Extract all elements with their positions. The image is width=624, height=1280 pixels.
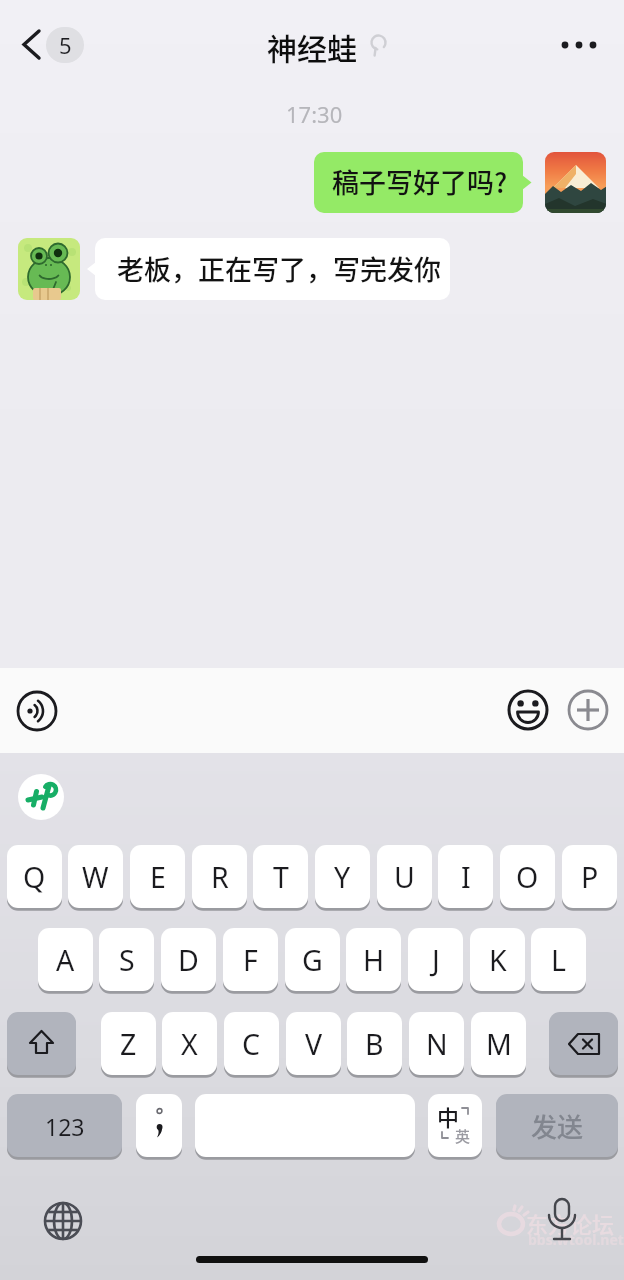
button[interactable] xyxy=(136,1094,182,1158)
staticText: T xyxy=(273,858,289,897)
button[interactable] xyxy=(18,238,80,300)
button[interactable]: Z xyxy=(101,1012,156,1076)
button[interactable]: O xyxy=(500,845,555,909)
staticText: 17:30 xyxy=(286,99,343,129)
button[interactable] xyxy=(507,689,549,731)
button[interactable]: M xyxy=(471,1012,526,1076)
staticText: C xyxy=(242,1025,261,1064)
staticText: L xyxy=(551,941,566,980)
button[interactable]: 中 xyxy=(428,1094,482,1158)
staticText: K xyxy=(489,941,507,980)
staticText: 123 xyxy=(45,1111,85,1142)
button[interactable]: U xyxy=(377,845,432,909)
staticText: Z xyxy=(120,1025,137,1064)
button[interactable] xyxy=(567,689,609,731)
button[interactable]: 稿子写好了吗? xyxy=(314,152,532,213)
staticText: O xyxy=(516,858,539,897)
button[interactable] xyxy=(18,774,64,820)
staticText: J xyxy=(432,941,440,980)
staticText: M xyxy=(486,1025,512,1064)
button[interactable] xyxy=(552,24,608,64)
button[interactable]: 发送 xyxy=(496,1094,618,1158)
button[interactable]: V xyxy=(286,1012,341,1076)
staticText: G xyxy=(302,941,323,980)
button[interactable]: T xyxy=(253,845,308,909)
button[interactable] xyxy=(545,152,606,213)
staticText: 老板，正在写了，写完发你 xyxy=(117,249,441,288)
staticText: X xyxy=(181,1025,198,1064)
staticText: N xyxy=(426,1025,448,1064)
button[interactable]: H xyxy=(346,928,401,992)
staticText: Y xyxy=(334,858,351,897)
button[interactable] xyxy=(546,1194,578,1246)
button[interactable]: 5 xyxy=(46,27,84,63)
staticText: S xyxy=(119,941,135,980)
staticText: R xyxy=(211,858,229,897)
staticText: 东方论坛 xyxy=(526,1207,615,1239)
button[interactable]: E xyxy=(130,845,185,909)
staticText: B xyxy=(365,1025,384,1064)
button[interactable]: S xyxy=(99,928,154,992)
button[interactable]: A xyxy=(38,928,93,992)
staticText: P xyxy=(581,858,599,897)
staticText: 英 xyxy=(455,1125,471,1147)
staticText: 神经蛙 xyxy=(267,25,357,68)
staticText: 稿子写好了吗? xyxy=(332,162,508,201)
staticText: 发送 xyxy=(531,1107,584,1145)
staticText: V xyxy=(305,1025,323,1064)
staticText: U xyxy=(394,858,415,897)
staticText: 中 xyxy=(437,1100,460,1132)
staticText: I xyxy=(461,858,471,897)
staticText: Q xyxy=(23,858,46,897)
button[interactable]: W xyxy=(68,845,123,909)
button[interactable]: N xyxy=(409,1012,464,1076)
button[interactable]: F xyxy=(223,928,278,992)
button[interactable] xyxy=(7,1012,76,1076)
staticText: D xyxy=(178,941,199,980)
button[interactable] xyxy=(549,1012,618,1076)
button[interactable]: B xyxy=(347,1012,402,1076)
button[interactable]: 老板，正在写了，写完发你 xyxy=(87,238,450,300)
button[interactable]: I xyxy=(438,845,493,909)
button[interactable]: 123 xyxy=(7,1094,122,1158)
staticText: 5 xyxy=(59,30,72,60)
button[interactable] xyxy=(16,690,58,732)
button[interactable]: L xyxy=(531,928,586,992)
button[interactable]: G xyxy=(285,928,340,992)
button[interactable]: D xyxy=(161,928,216,992)
button[interactable]: X xyxy=(162,1012,217,1076)
button[interactable]: Q xyxy=(7,845,62,909)
button[interactable] xyxy=(42,1200,84,1242)
button[interactable]: P xyxy=(562,845,617,909)
button[interactable]: R xyxy=(192,845,247,909)
staticText: E xyxy=(150,858,166,897)
button[interactable] xyxy=(195,1094,415,1158)
button[interactable]: K xyxy=(470,928,525,992)
button[interactable]: Y xyxy=(315,845,370,909)
button[interactable] xyxy=(12,24,48,64)
staticText: H xyxy=(363,941,385,980)
staticText: F xyxy=(243,941,258,980)
button[interactable]: J xyxy=(408,928,463,992)
staticText: A xyxy=(56,941,75,980)
staticText: bbs.wtool.net xyxy=(528,1230,624,1249)
staticText: W xyxy=(82,858,109,897)
button[interactable]: C xyxy=(224,1012,279,1076)
